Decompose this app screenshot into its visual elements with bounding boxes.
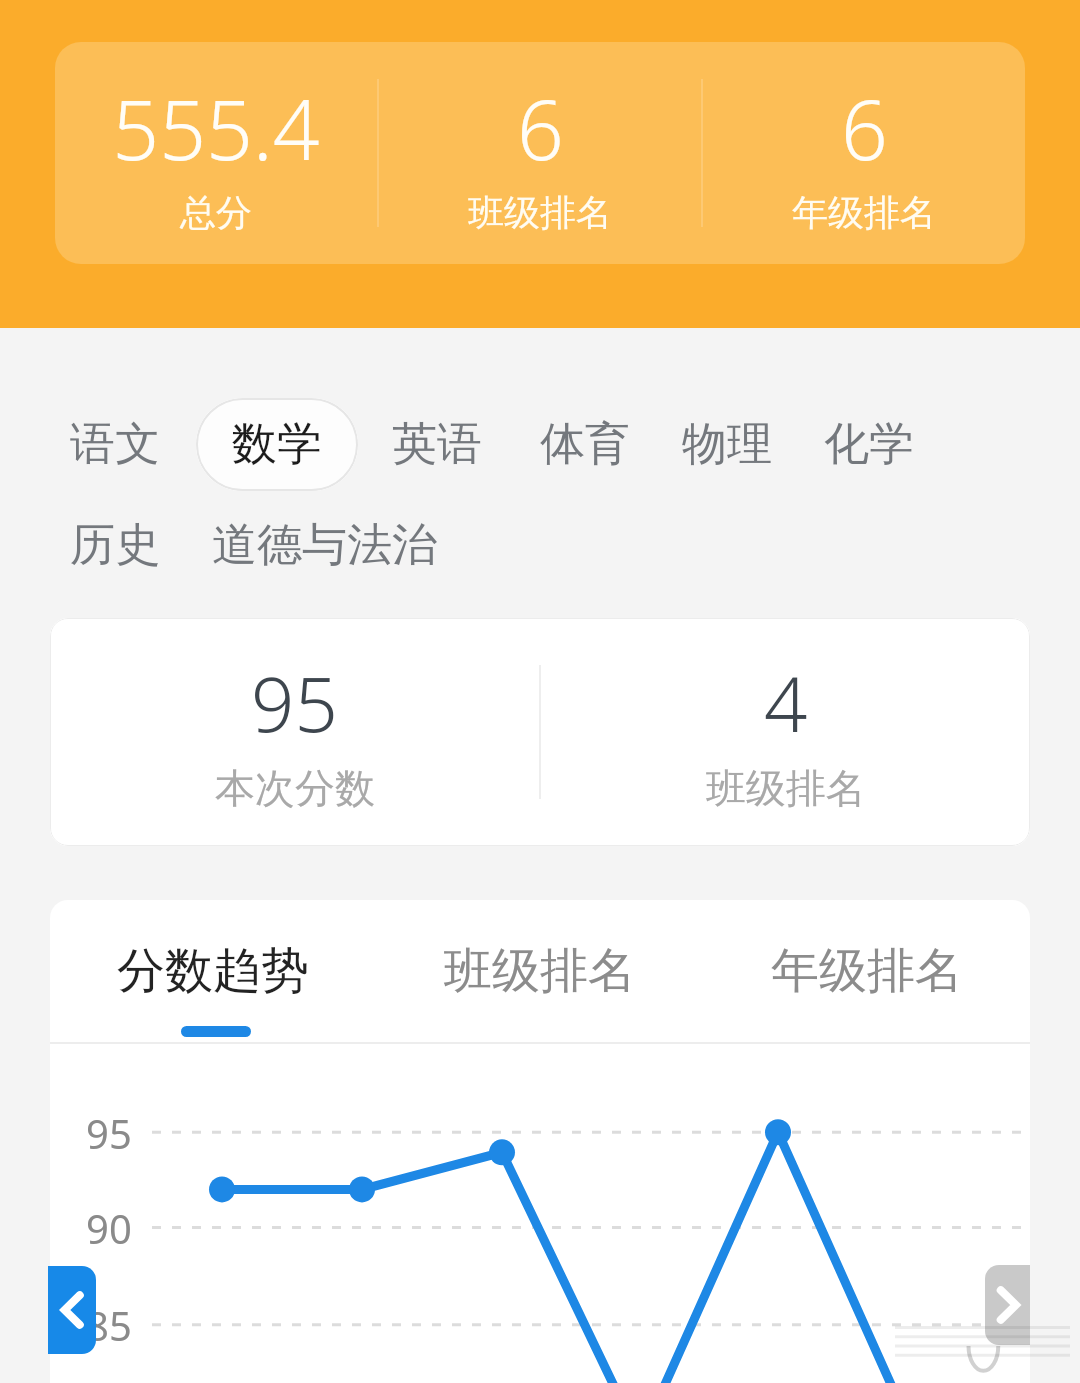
- button[interactable]: 语文: [66, 398, 164, 491]
- staticText: 90: [86, 1201, 132, 1255]
- staticText: 年级排名: [771, 941, 963, 1001]
- staticText: 年级排名: [792, 190, 936, 235]
- staticText: 总分: [180, 190, 252, 235]
- button[interactable]: 英语: [388, 398, 486, 491]
- staticText: 95: [86, 1106, 132, 1160]
- button[interactable]: 历史: [66, 499, 164, 592]
- staticText: 555.4: [112, 72, 320, 184]
- staticText: 数学: [232, 416, 322, 473]
- staticText: 85: [86, 1298, 132, 1352]
- staticText: 4: [764, 651, 808, 755]
- staticText: 95: [251, 651, 338, 755]
- staticText: 化学: [824, 416, 914, 473]
- staticText: 班级排名: [468, 190, 612, 235]
- staticText: 6: [517, 72, 564, 184]
- button[interactable]: 年级排名: [703, 900, 1030, 1042]
- staticText: 分数趋势: [117, 941, 309, 1001]
- staticText: 6: [841, 72, 888, 184]
- button[interactable]: 体育: [536, 398, 634, 491]
- staticText: 体育: [540, 416, 630, 473]
- staticText: 语文: [70, 416, 160, 473]
- button[interactable]: 道德与法治: [208, 499, 441, 592]
- button[interactable]: Previous: [48, 1266, 96, 1354]
- staticText: 历史: [70, 517, 160, 574]
- staticText: 物理: [682, 416, 772, 473]
- button[interactable]: 95: [50, 618, 1030, 846]
- button[interactable]: 分数趋势: [50, 900, 376, 1042]
- button[interactable]: 化学: [820, 398, 918, 491]
- staticText: 本次分数: [215, 763, 375, 813]
- button[interactable]: 班级排名: [376, 900, 703, 1042]
- button[interactable]: Next: [985, 1265, 1030, 1345]
- staticText: 英语: [392, 416, 482, 473]
- staticText: 班级排名: [706, 763, 866, 813]
- staticText: 道德与法治: [212, 517, 437, 574]
- staticText: 班级排名: [444, 941, 636, 1001]
- button[interactable]: 物理: [678, 398, 776, 491]
- button[interactable]: 555.4: [55, 42, 1025, 264]
- button[interactable]: 数学: [196, 398, 358, 491]
